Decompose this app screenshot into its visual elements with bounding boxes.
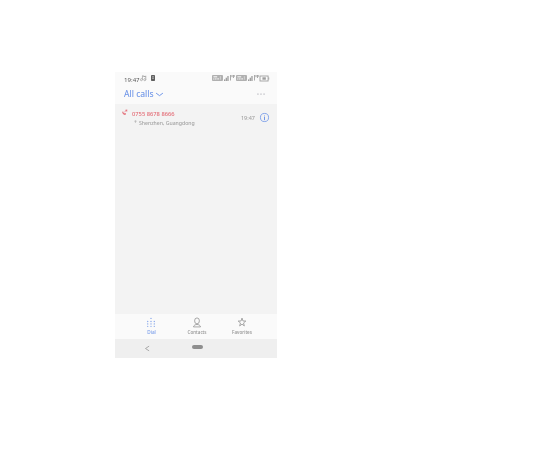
button[interactable]: Home [192,345,203,349]
staticText: 0755 8678 8666 [132,110,175,118]
button[interactable]: More options [254,87,268,101]
staticText: 19:47 [124,75,140,83]
staticText: All calls [124,88,154,100]
button[interactable]: Favorites [222,314,262,339]
button[interactable]: 0755 8678 8666 [115,104,277,127]
button[interactable]: Back [140,341,154,355]
staticText: Dial [147,329,156,335]
staticText: 19:47 [241,114,255,121]
button[interactable]: Dial [131,314,171,339]
button[interactable]: All calls [123,87,164,101]
button[interactable]: Contacts [177,314,217,339]
button[interactable]: Call details [258,111,271,124]
staticText: Contacts [187,329,207,335]
staticText: Shenzhen, Guangdong [139,119,195,126]
staticText: Favorites [232,329,252,335]
